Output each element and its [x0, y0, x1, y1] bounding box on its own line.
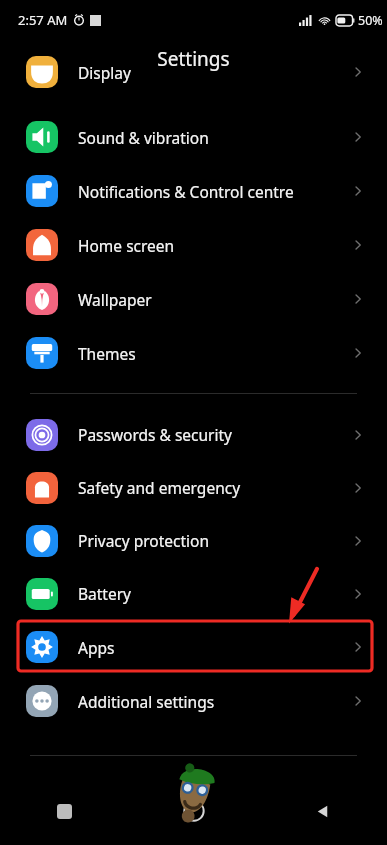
staticText: Wallpaper	[78, 289, 152, 310]
staticText: Sound & vibration	[78, 127, 209, 148]
button[interactable]: Safety and emergency	[0, 461, 387, 514]
staticText: Battery	[78, 583, 132, 604]
staticText: Passwords & security	[78, 424, 233, 445]
button[interactable]: Display	[0, 78, 387, 110]
button[interactable]: Back	[258, 777, 387, 845]
button[interactable]: Additional settings	[0, 674, 387, 728]
button[interactable]: Passwords & security	[0, 408, 387, 461]
staticText: Safety and emergency	[78, 477, 241, 498]
staticText: Notifications & Control centre	[78, 181, 294, 202]
button[interactable]: Sound & vibration	[0, 110, 387, 164]
button[interactable]: Notifications & Control centre	[0, 164, 387, 218]
button[interactable]: Themes	[0, 326, 387, 380]
staticText: Settings	[157, 46, 230, 72]
button[interactable]: Wallpaper	[0, 272, 387, 326]
button[interactable]: Recent apps	[0, 777, 129, 845]
staticText: Home screen	[78, 235, 175, 256]
staticText: 50%	[358, 12, 383, 29]
button[interactable]: Battery	[0, 567, 387, 620]
button[interactable]: Apps	[0, 620, 387, 674]
button[interactable]: Home screen	[0, 218, 387, 272]
button[interactable]: Privacy protection	[0, 514, 387, 567]
button[interactable]: Display	[0, 56, 387, 88]
staticText: Privacy protection	[78, 530, 210, 551]
staticText: 2:57 AM	[18, 11, 68, 29]
staticText: Apps	[78, 637, 115, 658]
staticText: Display	[78, 62, 131, 83]
button[interactable]: Home	[129, 777, 258, 845]
staticText: Themes	[78, 343, 136, 364]
staticText: Additional settings	[78, 691, 215, 712]
